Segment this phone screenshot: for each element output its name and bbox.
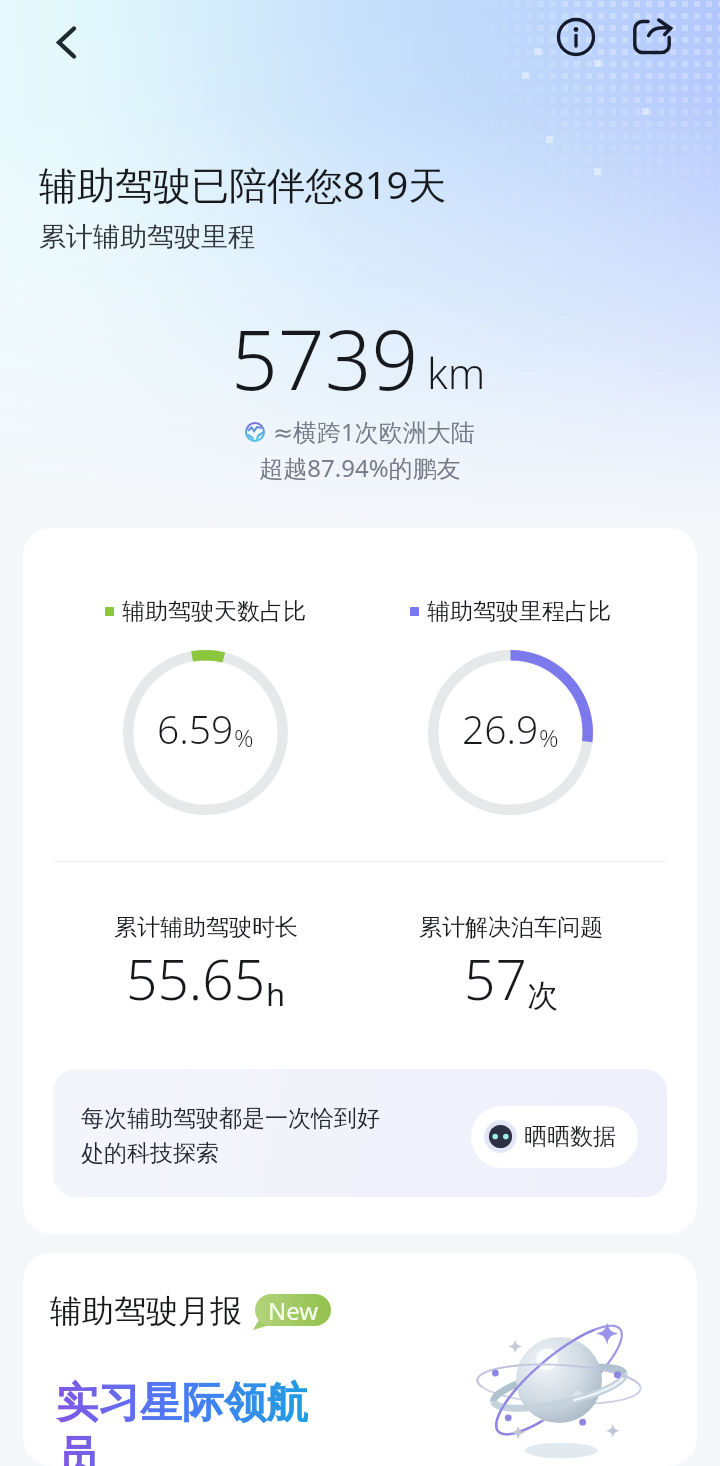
staticText: 每次辅助驾驶都是一次恰到好 xyxy=(81,1104,380,1133)
staticText: 5739 xyxy=(231,302,419,414)
staticText: 实习星际领航 员 xyxy=(56,1377,308,1466)
button[interactable]: Info xyxy=(550,11,602,63)
staticText: 辅助驾驶已陪伴您819天 xyxy=(39,158,447,210)
staticText: 次 xyxy=(527,976,558,1015)
staticText: 处的科技探索 xyxy=(81,1139,219,1168)
staticText: % xyxy=(234,721,254,754)
staticText: 累计辅助驾驶里程 xyxy=(39,220,255,254)
staticText: 累计辅助驾驶时长 xyxy=(114,913,298,942)
button[interactable]: Back xyxy=(39,14,91,66)
staticText: 辅助驾驶月报 xyxy=(50,1291,242,1331)
staticText: h xyxy=(266,973,286,1015)
staticText: 26.9 xyxy=(462,702,539,755)
button[interactable]: 晒晒数据 xyxy=(471,1106,638,1168)
staticText: 辅助驾驶天数占比 xyxy=(122,597,306,626)
staticText: 57 xyxy=(464,941,527,1016)
staticText: New xyxy=(268,1294,319,1326)
staticText: 累计解决泊车问题 xyxy=(419,913,603,942)
staticText: 55.65 xyxy=(126,941,266,1016)
button[interactable]: 辅助驾驶月报 xyxy=(23,1253,697,1466)
staticText: km xyxy=(427,344,486,401)
staticText: ≈横跨1次欧洲大陆 xyxy=(273,415,475,448)
staticText: 6.59 xyxy=(157,702,234,755)
button[interactable]: Share xyxy=(626,11,678,63)
staticText: 超越87.94%的鹏友 xyxy=(0,451,720,484)
staticText: 晒晒数据 xyxy=(524,1122,616,1151)
staticText: 辅助驾驶里程占比 xyxy=(427,597,611,626)
staticText: % xyxy=(539,721,559,754)
